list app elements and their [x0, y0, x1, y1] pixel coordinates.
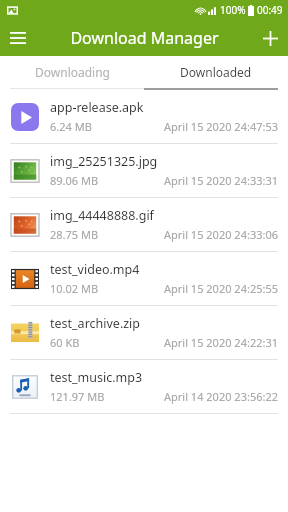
- staticText: Downloading: [35, 64, 110, 80]
- staticText: 10.02 MB: [50, 281, 99, 296]
- button[interactable]: Downloaded: [144, 56, 288, 88]
- button[interactable]: test_archive.zip: [0, 306, 288, 359]
- button[interactable]: img_25251325.jpg: [0, 144, 288, 197]
- staticText: Downloaded: [180, 64, 252, 80]
- button[interactable]: test_video.mp4: [0, 252, 288, 305]
- button[interactable]: app-release.apk: [0, 90, 288, 143]
- staticText: April 15 2020 24:33:31: [164, 173, 278, 188]
- staticText: img_44448888.gif: [50, 207, 154, 224]
- staticText: test_video.mp4: [50, 261, 140, 278]
- staticText: test_music.mp3: [50, 369, 143, 386]
- button[interactable]: test_music.mp3: [0, 360, 288, 413]
- staticText: Download Manager: [70, 27, 219, 49]
- staticText: April 15 2020 24:33:06: [164, 227, 278, 242]
- staticText: 121.97 MB: [50, 389, 105, 404]
- staticText: 6.24 MB: [50, 119, 92, 134]
- button[interactable]: Open navigation menu: [0, 20, 36, 56]
- staticText: April 15 2020 24:25:55: [164, 281, 278, 296]
- staticText: 28.75 MB: [50, 227, 99, 242]
- staticText: 60 KB: [50, 335, 80, 350]
- button[interactable]: img_44448888.gif: [0, 198, 288, 251]
- staticText: img_25251325.jpg: [50, 153, 158, 170]
- staticText: app-release.apk: [50, 99, 144, 116]
- staticText: 89.06 MB: [50, 173, 99, 188]
- staticText: test_archive.zip: [50, 315, 141, 332]
- staticText: April 15 2020 24:47:53: [164, 119, 278, 134]
- button[interactable]: Add download: [252, 20, 288, 56]
- button[interactable]: Downloading: [0, 56, 144, 88]
- staticText: 00:49: [257, 3, 283, 17]
- staticText: April 15 2020 24:22:31: [164, 335, 278, 350]
- staticText: April 14 2020 23:56:22: [164, 389, 278, 404]
- staticText: 100%: [220, 3, 246, 17]
